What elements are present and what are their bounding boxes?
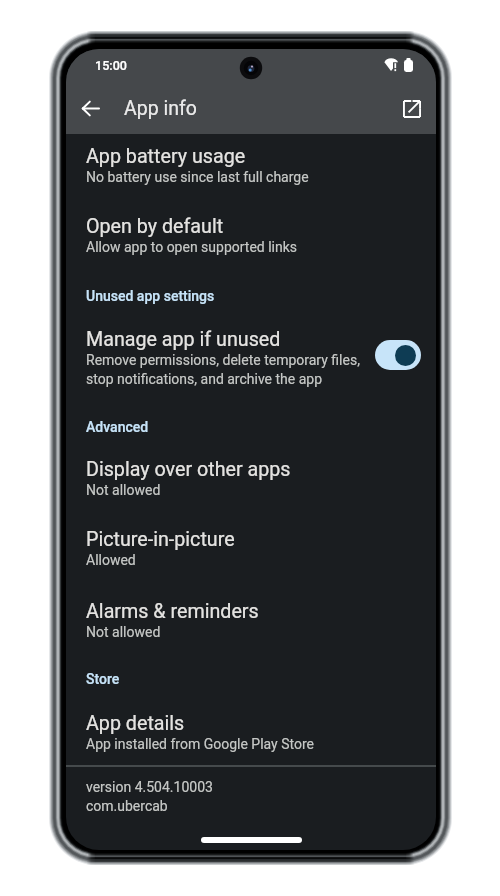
staticText: Store <box>86 671 120 687</box>
staticText: Unused app settings <box>86 288 215 304</box>
staticText: Remove permissions, delete temporary fil… <box>86 352 360 388</box>
staticText: version 4.504.10003 <box>86 779 213 795</box>
button[interactable]: App battery usage <box>66 133 436 197</box>
staticText: 15:00 <box>95 58 127 73</box>
button[interactable]: Picture-in-picture <box>66 516 436 580</box>
staticText: App info <box>124 97 197 120</box>
staticText: App details <box>86 712 185 735</box>
button[interactable]: Display over other apps <box>66 446 436 510</box>
staticText: App installed from Google Play Store <box>86 736 314 752</box>
staticText: com.ubercab <box>86 798 168 814</box>
staticText: Not allowed <box>86 624 161 640</box>
staticText: No battery use since last full charge <box>86 169 309 185</box>
staticText: Display over other apps <box>86 458 291 481</box>
staticText: Picture-in-picture <box>86 528 235 551</box>
button[interactable]: App details <box>66 700 436 764</box>
button[interactable]: Manage app if unused <box>66 316 436 400</box>
staticText: Alarms & reminders <box>86 600 259 623</box>
button[interactable]: Open in browser <box>391 88 432 129</box>
button[interactable]: Alarms & reminders <box>66 588 436 652</box>
staticText: Open by default <box>86 215 224 238</box>
staticText: Manage app if unused <box>86 328 281 351</box>
staticText: Not allowed <box>86 482 161 498</box>
staticText: Allowed <box>86 552 136 568</box>
button[interactable]: Open by default <box>66 203 436 267</box>
staticText: Allow app to open supported links <box>86 239 298 255</box>
button[interactable]: Manage app if unused <box>375 340 421 370</box>
button[interactable]: Back <box>70 88 111 129</box>
staticText: Advanced <box>86 419 149 435</box>
staticText: App battery usage <box>86 145 246 168</box>
